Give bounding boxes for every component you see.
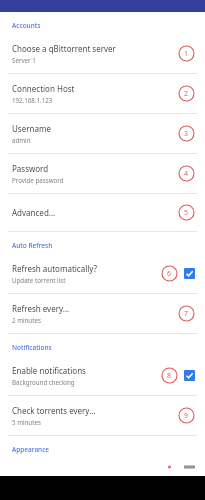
staticText: 9 [184, 411, 189, 421]
staticText: 2 [184, 89, 189, 99]
button[interactable]: Use dark theme [0, 458, 205, 476]
staticText: Enable notifications [12, 365, 86, 376]
staticText: Background checking [12, 378, 75, 386]
staticText: Server 1 [12, 56, 36, 64]
staticText: 5 minutes [12, 418, 41, 426]
button[interactable]: Check torrents every... [0, 396, 205, 435]
staticText: Accounts [12, 21, 41, 30]
staticText: Provide password [12, 176, 64, 184]
staticText: Username [12, 123, 51, 134]
staticText: 8 [167, 371, 172, 381]
staticText: 5 [184, 208, 189, 218]
staticText: admin [12, 136, 31, 144]
staticText: 4 [184, 169, 189, 179]
staticText: Refresh automatically? [12, 263, 97, 274]
staticText: 6 [167, 269, 172, 279]
staticText: Notifications [12, 343, 52, 352]
button[interactable]: Advanced... [0, 194, 205, 231]
staticText: 3 [184, 129, 189, 139]
staticText: 192.168.1.123 [12, 96, 53, 104]
staticText: Choose a qBittorrent server [12, 43, 116, 54]
button[interactable]: Refresh automatically? [0, 254, 205, 293]
staticText: Advanced... [12, 207, 56, 218]
button[interactable]: Connection Host [0, 74, 205, 113]
staticText: 1 [184, 49, 189, 59]
button[interactable]: Choose a qBittorrent server [0, 34, 205, 73]
button[interactable]: Username [0, 114, 205, 153]
staticText: Update torrent list [12, 276, 66, 284]
staticText: 2 minutes [12, 316, 41, 324]
other: Checked [184, 268, 195, 279]
staticText: Refresh every... [12, 303, 70, 314]
staticText: Password [12, 163, 49, 174]
other: Checked [184, 370, 195, 381]
button[interactable]: Password [0, 154, 205, 193]
staticText: Connection Host [12, 83, 75, 94]
staticText: Auto Refresh [12, 241, 53, 250]
button[interactable]: Refresh every... [0, 294, 205, 333]
staticText: 7 [184, 309, 189, 319]
staticText: Check torrents every... [12, 405, 96, 416]
staticText: Appearance [12, 445, 50, 454]
button[interactable]: Enable notifications [0, 356, 205, 395]
